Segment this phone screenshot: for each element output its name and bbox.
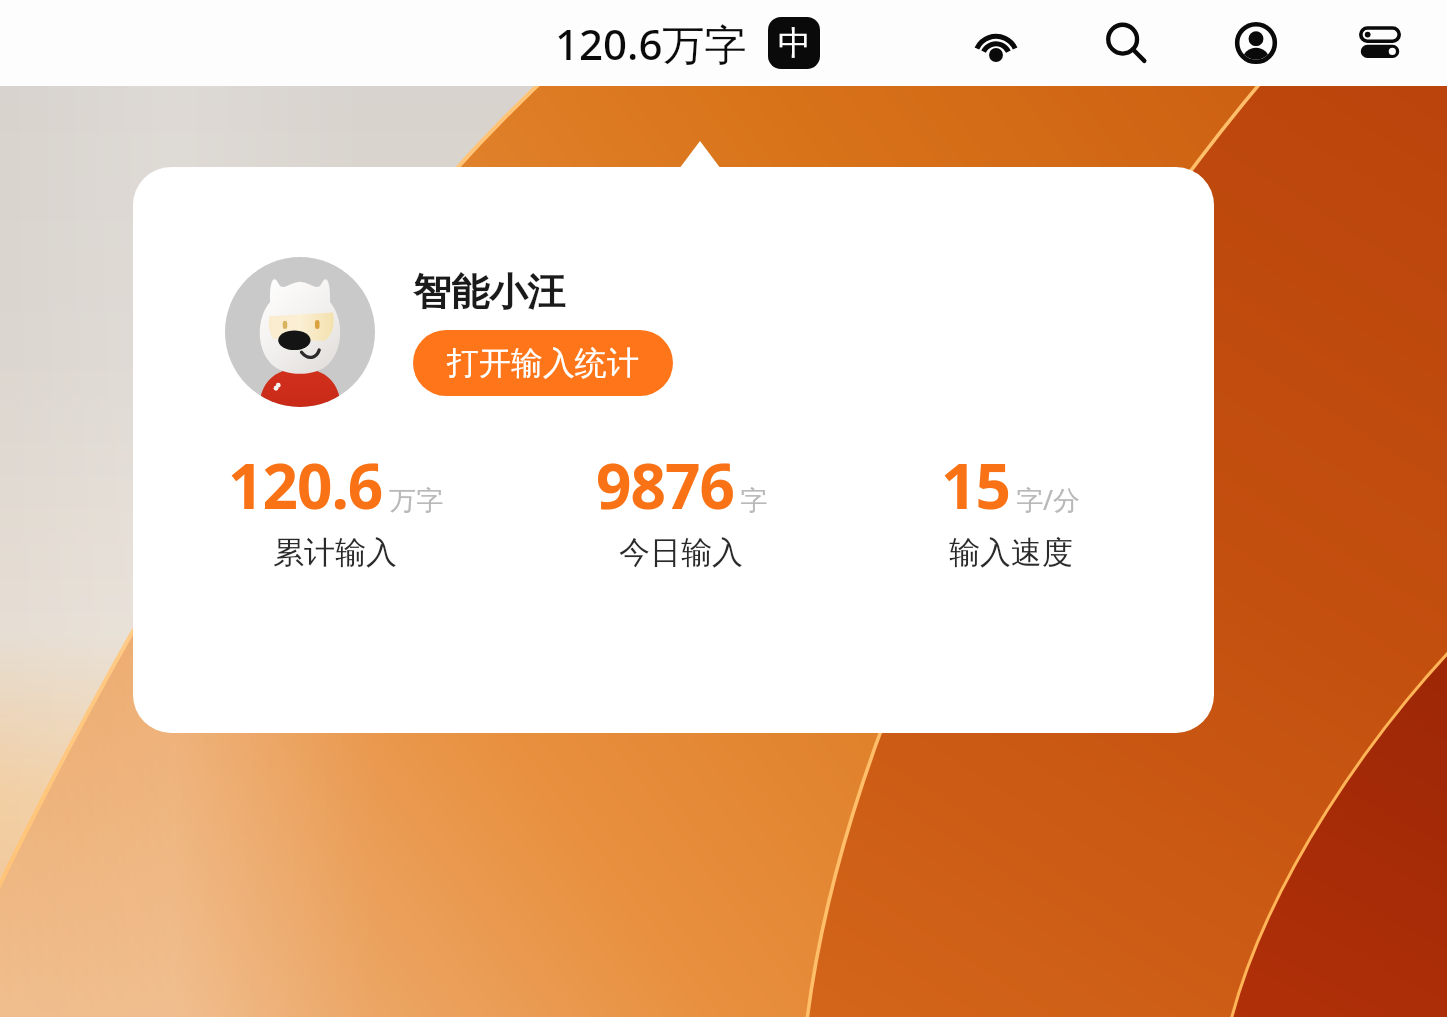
- staticText: 120.6万字: [555, 15, 747, 72]
- staticText: 万字: [389, 484, 443, 518]
- button[interactable]: Search: [1061, 0, 1191, 86]
- staticText: 累计输入: [273, 533, 397, 572]
- button[interactable]: 打开输入统计: [413, 330, 673, 396]
- staticText: 中: [778, 22, 811, 64]
- button[interactable]: 15: [849, 443, 1172, 572]
- button[interactable]: 9876: [513, 443, 849, 572]
- staticText: 今日输入: [619, 533, 743, 572]
- staticText: 字/分: [1016, 481, 1081, 518]
- button[interactable]: Account: [1191, 0, 1321, 86]
- button[interactable]: Wi-Fi: [931, 0, 1061, 86]
- button[interactable]: 120.6: [157, 443, 513, 572]
- staticText: 字: [740, 484, 767, 518]
- button[interactable]: Control Center: [1321, 0, 1439, 86]
- button[interactable]: 120.6万字: [553, 0, 822, 86]
- staticText: 9876: [596, 443, 734, 527]
- staticText: 15: [941, 443, 1010, 527]
- staticText: 打开输入统计: [447, 343, 639, 383]
- staticText: 智能小汪: [413, 268, 565, 316]
- staticText: 120.6: [228, 443, 383, 527]
- staticText: 输入速度: [949, 533, 1073, 572]
